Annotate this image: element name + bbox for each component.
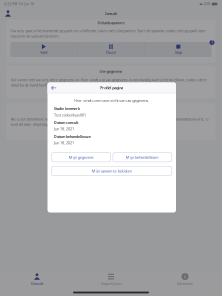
staticText: Consult <box>104 11 117 16</box>
staticText: Geluidsopname <box>97 20 124 25</box>
staticText: Informatie <box>177 281 193 286</box>
button[interactable]: Consult <box>0 273 74 286</box>
staticText: 60% <box>204 2 211 6</box>
staticText: Studie kenmerk <box>54 106 80 111</box>
staticText: Als u een definitieve behandelkeuze heef… <box>11 117 209 127</box>
staticText: Uw gegevens <box>99 69 122 74</box>
staticText: Vul samen met uw arts deze gegevens in. … <box>11 77 207 88</box>
staticText: Consult <box>31 281 43 286</box>
staticText: 4:23 PM Fri Jun 18 <box>4 2 34 6</box>
staticText: Datum behandelkeuze <box>54 134 91 139</box>
staticText: Test ziekenhuis001 <box>54 112 86 118</box>
staticText: Pauze <box>106 50 116 55</box>
staticText: Hier vindt u een overzicht van uw gegeve… <box>74 98 149 103</box>
button[interactable]: Pauze <box>78 42 144 57</box>
button[interactable]: Mijn behandelteam <box>113 152 172 162</box>
staticText: Stop <box>175 50 182 55</box>
button[interactable]: Informatie <box>148 273 222 286</box>
button[interactable]: Vragenlijsten <box>74 273 148 286</box>
staticText: Profiel pagina <box>100 85 123 90</box>
staticText: Mijn opnames bekijken <box>92 168 132 174</box>
staticText: ? <box>211 39 213 46</box>
staticText: Vragenlijsten <box>100 281 121 286</box>
button[interactable]: Help <box>209 40 214 45</box>
staticText: Mijn behandelteam <box>126 154 159 160</box>
staticText: Jun 18, 2021 <box>54 140 74 145</box>
button[interactable]: Profiel <box>4 10 11 17</box>
button[interactable]: Terug <box>51 85 56 91</box>
button[interactable]: Stop <box>145 42 212 57</box>
staticText: Mijn gegevens <box>69 154 94 160</box>
staticText: Uw arts gaat in het komende gesprek vers… <box>10 28 206 39</box>
staticText: Jun 18, 2021 <box>54 126 74 131</box>
button[interactable]: Start <box>10 42 77 57</box>
staticText: Start <box>40 50 47 55</box>
staticText: Datum consult <box>54 120 78 125</box>
button[interactable]: Mijn gegevens <box>52 152 110 162</box>
button[interactable]: Mijn opnames bekijken <box>52 166 172 176</box>
